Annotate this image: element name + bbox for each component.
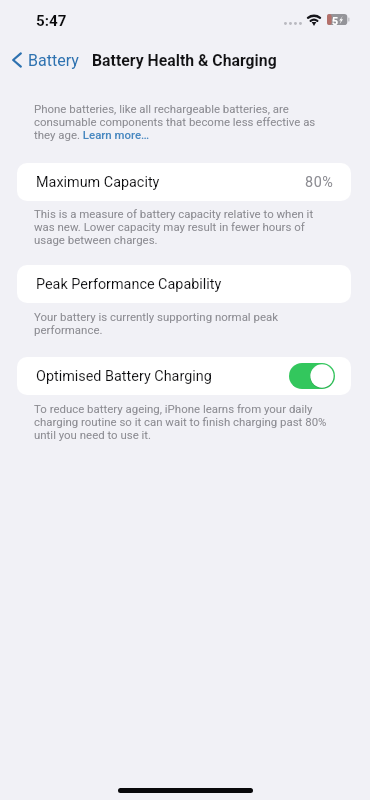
staticText: 5	[332, 15, 338, 27]
staticText: This is a measure of battery capacity re…	[34, 208, 335, 247]
staticText: Peak Performance Capability	[36, 276, 222, 293]
staticText: Battery	[28, 51, 79, 70]
staticText: Your battery is currently supporting nor…	[34, 311, 335, 337]
staticText: 80%	[305, 174, 334, 191]
staticText: Battery Health & Charging	[92, 51, 277, 70]
staticText: Maximum Capacity	[36, 174, 160, 191]
button[interactable]: Optimised Battery Charging	[17, 357, 351, 395]
button[interactable]: Peak Performance Capability	[17, 265, 351, 303]
button[interactable]: Maximum Capacity	[17, 163, 351, 201]
other: Wi-Fi	[306, 13, 322, 26]
staticText: 5:47	[36, 12, 67, 30]
button[interactable]: Battery	[10, 49, 79, 71]
staticText: Optimised Battery Charging	[36, 368, 212, 385]
button[interactable]: Optimised Battery Charging	[289, 363, 335, 389]
staticText: To reduce battery ageing, iPhone learns …	[34, 403, 335, 442]
button[interactable]: Learn more	[49, 127, 115, 140]
staticText: Phone batteries, like all rechargeable b…	[34, 103, 335, 142]
other: Battery 5 percent charging	[327, 14, 350, 25]
